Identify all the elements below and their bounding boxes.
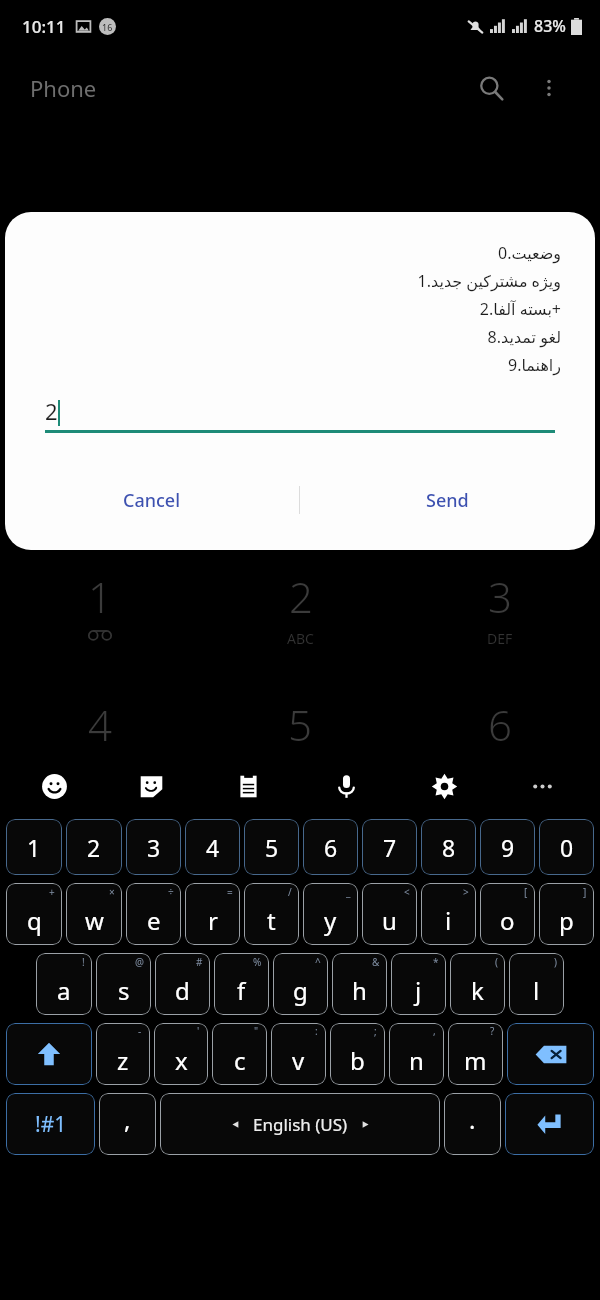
staticText: l <box>533 974 540 1007</box>
staticText: < <box>404 885 410 899</box>
button[interactable]: * <box>391 953 446 1015</box>
button[interactable]: : <box>271 1023 326 1085</box>
button[interactable]: ' <box>154 1023 208 1085</box>
button[interactable]: 8 <box>421 819 476 875</box>
button[interactable]: 3 <box>126 819 181 875</box>
staticText: 8.لغو تمدید <box>487 326 561 348</box>
button[interactable]: 7 <box>362 819 417 875</box>
button[interactable]: & <box>332 953 387 1015</box>
staticText: ; <box>374 1024 377 1038</box>
button[interactable]: 9 <box>480 819 535 875</box>
staticText: i <box>445 904 452 937</box>
staticText: = <box>227 885 233 899</box>
staticText: 6 <box>488 696 512 753</box>
button[interactable]: 5 <box>200 684 400 794</box>
staticText: 0.وضعیت <box>497 242 561 264</box>
staticText: ^ <box>315 955 321 969</box>
staticText: 2 <box>289 568 313 625</box>
button[interactable]: > <box>421 883 476 945</box>
staticText: 10:11 <box>22 15 66 38</box>
button[interactable]: Keyboard settings <box>422 764 466 808</box>
button[interactable]: 0 <box>539 819 594 875</box>
staticText: x <box>175 1044 188 1077</box>
button[interactable]: ) <box>509 953 564 1015</box>
button[interactable]: = <box>185 883 240 945</box>
staticText: n <box>409 1044 424 1077</box>
staticText: _ <box>346 885 351 899</box>
staticText: q <box>27 904 42 937</box>
button[interactable]: ? <box>448 1023 503 1085</box>
button[interactable]: - <box>96 1023 150 1085</box>
button[interactable]: 2 <box>200 556 400 684</box>
staticText: b <box>350 1044 365 1077</box>
button[interactable]: 6 <box>303 819 358 875</box>
button[interactable]: # <box>155 953 210 1015</box>
staticText: % <box>253 955 262 969</box>
button[interactable]: % <box>214 953 269 1015</box>
button[interactable]: < <box>362 883 417 945</box>
staticText: 8 <box>442 832 456 863</box>
button[interactable]: @ <box>96 953 151 1015</box>
button[interactable]: Stickers <box>129 764 173 808</box>
button[interactable]: 1 <box>0 556 200 684</box>
staticText: 9 <box>501 832 515 863</box>
staticText: o <box>500 904 515 937</box>
staticText: 16 <box>102 21 113 33</box>
staticText: 4 <box>206 832 220 863</box>
staticText: k <box>471 974 484 1007</box>
button[interactable]: Space, English (US) <box>160 1093 440 1155</box>
staticText: v <box>292 1044 305 1077</box>
button[interactable]: × <box>66 883 122 945</box>
button[interactable]: Voice input <box>324 764 368 808</box>
button[interactable]: More options <box>520 764 564 808</box>
staticText: s <box>118 974 130 1007</box>
staticText: 3 <box>488 568 512 625</box>
button[interactable]: More options <box>526 65 572 111</box>
button[interactable]: ! <box>36 953 92 1015</box>
button[interactable]: Enter <box>505 1093 594 1155</box>
button[interactable]: Backspace <box>507 1023 594 1085</box>
button[interactable]: + <box>6 883 62 945</box>
staticText: u <box>382 904 397 937</box>
button[interactable]: / <box>244 883 299 945</box>
button[interactable]: 5 <box>244 819 299 875</box>
staticText: 3 <box>147 832 161 863</box>
button[interactable]: 2 <box>66 819 122 875</box>
button[interactable]: ÷ <box>126 883 181 945</box>
button[interactable]: ^ <box>273 953 328 1015</box>
button[interactable]: Search <box>468 65 514 111</box>
staticText: p <box>559 904 574 937</box>
button[interactable]: !#1 <box>6 1093 95 1155</box>
staticText: 83% <box>534 15 566 37</box>
button[interactable]: 4 <box>185 819 240 875</box>
staticText: × <box>109 885 115 899</box>
staticText: [ <box>524 885 528 899</box>
staticText: 2.بسته آلفا+ <box>479 298 561 320</box>
button[interactable]: Clipboard <box>226 764 270 808</box>
staticText: g <box>293 974 308 1007</box>
button[interactable]: ( <box>450 953 505 1015</box>
button[interactable]: 6 <box>400 684 600 794</box>
staticText: * <box>433 955 439 969</box>
button[interactable]: , <box>99 1093 156 1155</box>
staticText: + <box>49 885 55 899</box>
button[interactable]: Send <box>300 473 595 527</box>
button[interactable]: , <box>389 1023 444 1085</box>
staticText: !#1 <box>35 1110 67 1139</box>
button[interactable]: [ <box>480 883 535 945</box>
button[interactable]: Emoji <box>32 764 76 808</box>
button[interactable]: Cancel <box>5 473 299 527</box>
button[interactable]: 3 <box>400 556 600 684</box>
staticText: ? <box>490 1024 495 1038</box>
button[interactable]: 1 <box>6 819 62 875</box>
button[interactable]: . <box>444 1093 501 1155</box>
button[interactable]: " <box>212 1023 267 1085</box>
staticText: 7 <box>383 832 397 863</box>
staticText: w <box>85 904 104 937</box>
button[interactable]: 4 <box>0 684 200 794</box>
button[interactable]: Shift <box>6 1023 92 1085</box>
button[interactable]: ; <box>330 1023 385 1085</box>
button[interactable]: ] <box>539 883 594 945</box>
staticText: Cancel <box>123 488 181 513</box>
button[interactable]: _ <box>303 883 358 945</box>
